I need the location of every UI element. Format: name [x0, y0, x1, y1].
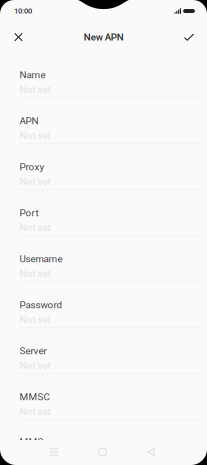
button[interactable]: Password — [19, 282, 200, 328]
staticText: Name — [19, 69, 45, 81]
button[interactable]: Save — [174, 23, 204, 52]
staticText: Password — [19, 299, 62, 311]
staticText: APN — [19, 115, 38, 127]
staticText: New APN — [84, 31, 124, 43]
staticText: Not set — [19, 176, 50, 187]
button[interactable]: Back — [135, 440, 167, 464]
staticText: Not set — [19, 406, 50, 417]
button[interactable]: Name — [19, 52, 200, 98]
staticText: Not set — [19, 130, 50, 141]
button[interactable]: Proxy — [19, 144, 200, 190]
button[interactable]: Username — [19, 236, 200, 282]
staticText: Server — [19, 345, 46, 357]
button[interactable]: Port — [19, 190, 200, 236]
staticText: Not set — [19, 222, 50, 233]
staticText: Proxy — [19, 161, 44, 173]
staticText: Username — [19, 253, 62, 265]
staticText: Not set — [19, 314, 50, 325]
button[interactable]: MMSC — [19, 374, 200, 420]
staticText: Port — [19, 207, 38, 219]
staticText: Not set — [19, 84, 50, 95]
button[interactable]: Server — [19, 328, 200, 374]
staticText: Not set — [19, 360, 50, 371]
button[interactable]: Close — [3, 23, 33, 52]
staticText: MMSC — [19, 391, 49, 403]
button[interactable]: Recent apps — [38, 440, 70, 464]
staticText: 10:00 — [14, 7, 32, 15]
staticText: MMS proxy — [19, 436, 70, 448]
button[interactable]: APN — [19, 98, 200, 144]
button[interactable]: Home — [86, 440, 118, 464]
staticText: Not set — [19, 268, 50, 279]
